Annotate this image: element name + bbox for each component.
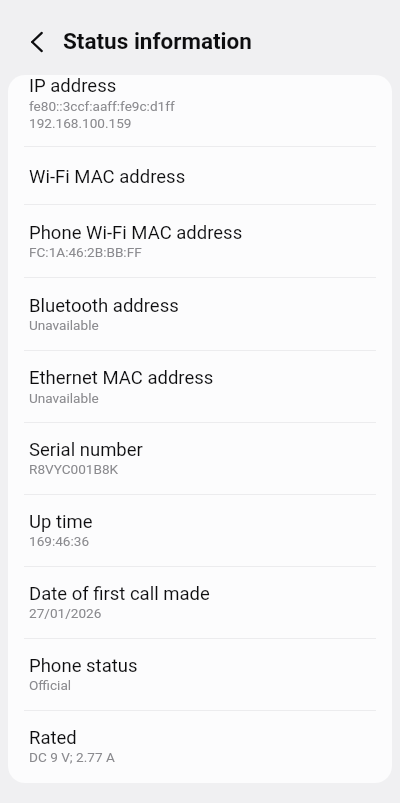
staticText: DC 9 V; 2.77 A	[29, 749, 115, 765]
staticText: 27/01/2026	[29, 605, 102, 621]
button[interactable]: IP address	[8, 75, 392, 147]
staticText: Unavailable	[29, 317, 99, 333]
staticText: IP address	[29, 75, 117, 97]
button[interactable]: Date of first call made	[8, 567, 392, 639]
button[interactable]: Phone Wi-Fi MAC address	[8, 205, 392, 278]
staticText: 169:46:36	[29, 533, 90, 549]
staticText: Ethernet MAC address	[29, 367, 214, 389]
staticText: Bluetooth address	[29, 295, 179, 317]
button[interactable]: Up time	[8, 495, 392, 567]
staticText: fe80::3ccf:aaff:fe9c:d1ff	[29, 98, 175, 114]
staticText: Serial number	[29, 439, 143, 461]
button[interactable]: Serial number	[8, 423, 392, 495]
button[interactable]: Bluetooth address	[8, 278, 392, 351]
button[interactable]: Navigate up	[14, 18, 60, 64]
button[interactable]: Rated	[8, 711, 392, 783]
staticText: Up time	[29, 511, 93, 533]
staticText: Official	[29, 677, 72, 693]
button[interactable]: Wi-Fi MAC address	[8, 147, 392, 205]
button[interactable]: Ethernet MAC address	[8, 351, 392, 423]
staticText: Unavailable	[29, 390, 99, 406]
staticText: Wi-Fi MAC address	[29, 166, 186, 188]
staticText: Phone status	[29, 655, 138, 677]
staticText: Date of first call made	[29, 583, 210, 605]
staticText: FC:1A:46:2B:BB:FF	[29, 244, 142, 260]
staticText: Status information	[63, 28, 252, 54]
staticText: R8VYC001B8K	[29, 461, 119, 477]
staticText: Phone Wi-Fi MAC address	[29, 222, 243, 244]
staticText: 192.168.100.159	[29, 115, 132, 131]
button[interactable]: Phone status	[8, 639, 392, 711]
staticText: Rated	[29, 727, 77, 749]
